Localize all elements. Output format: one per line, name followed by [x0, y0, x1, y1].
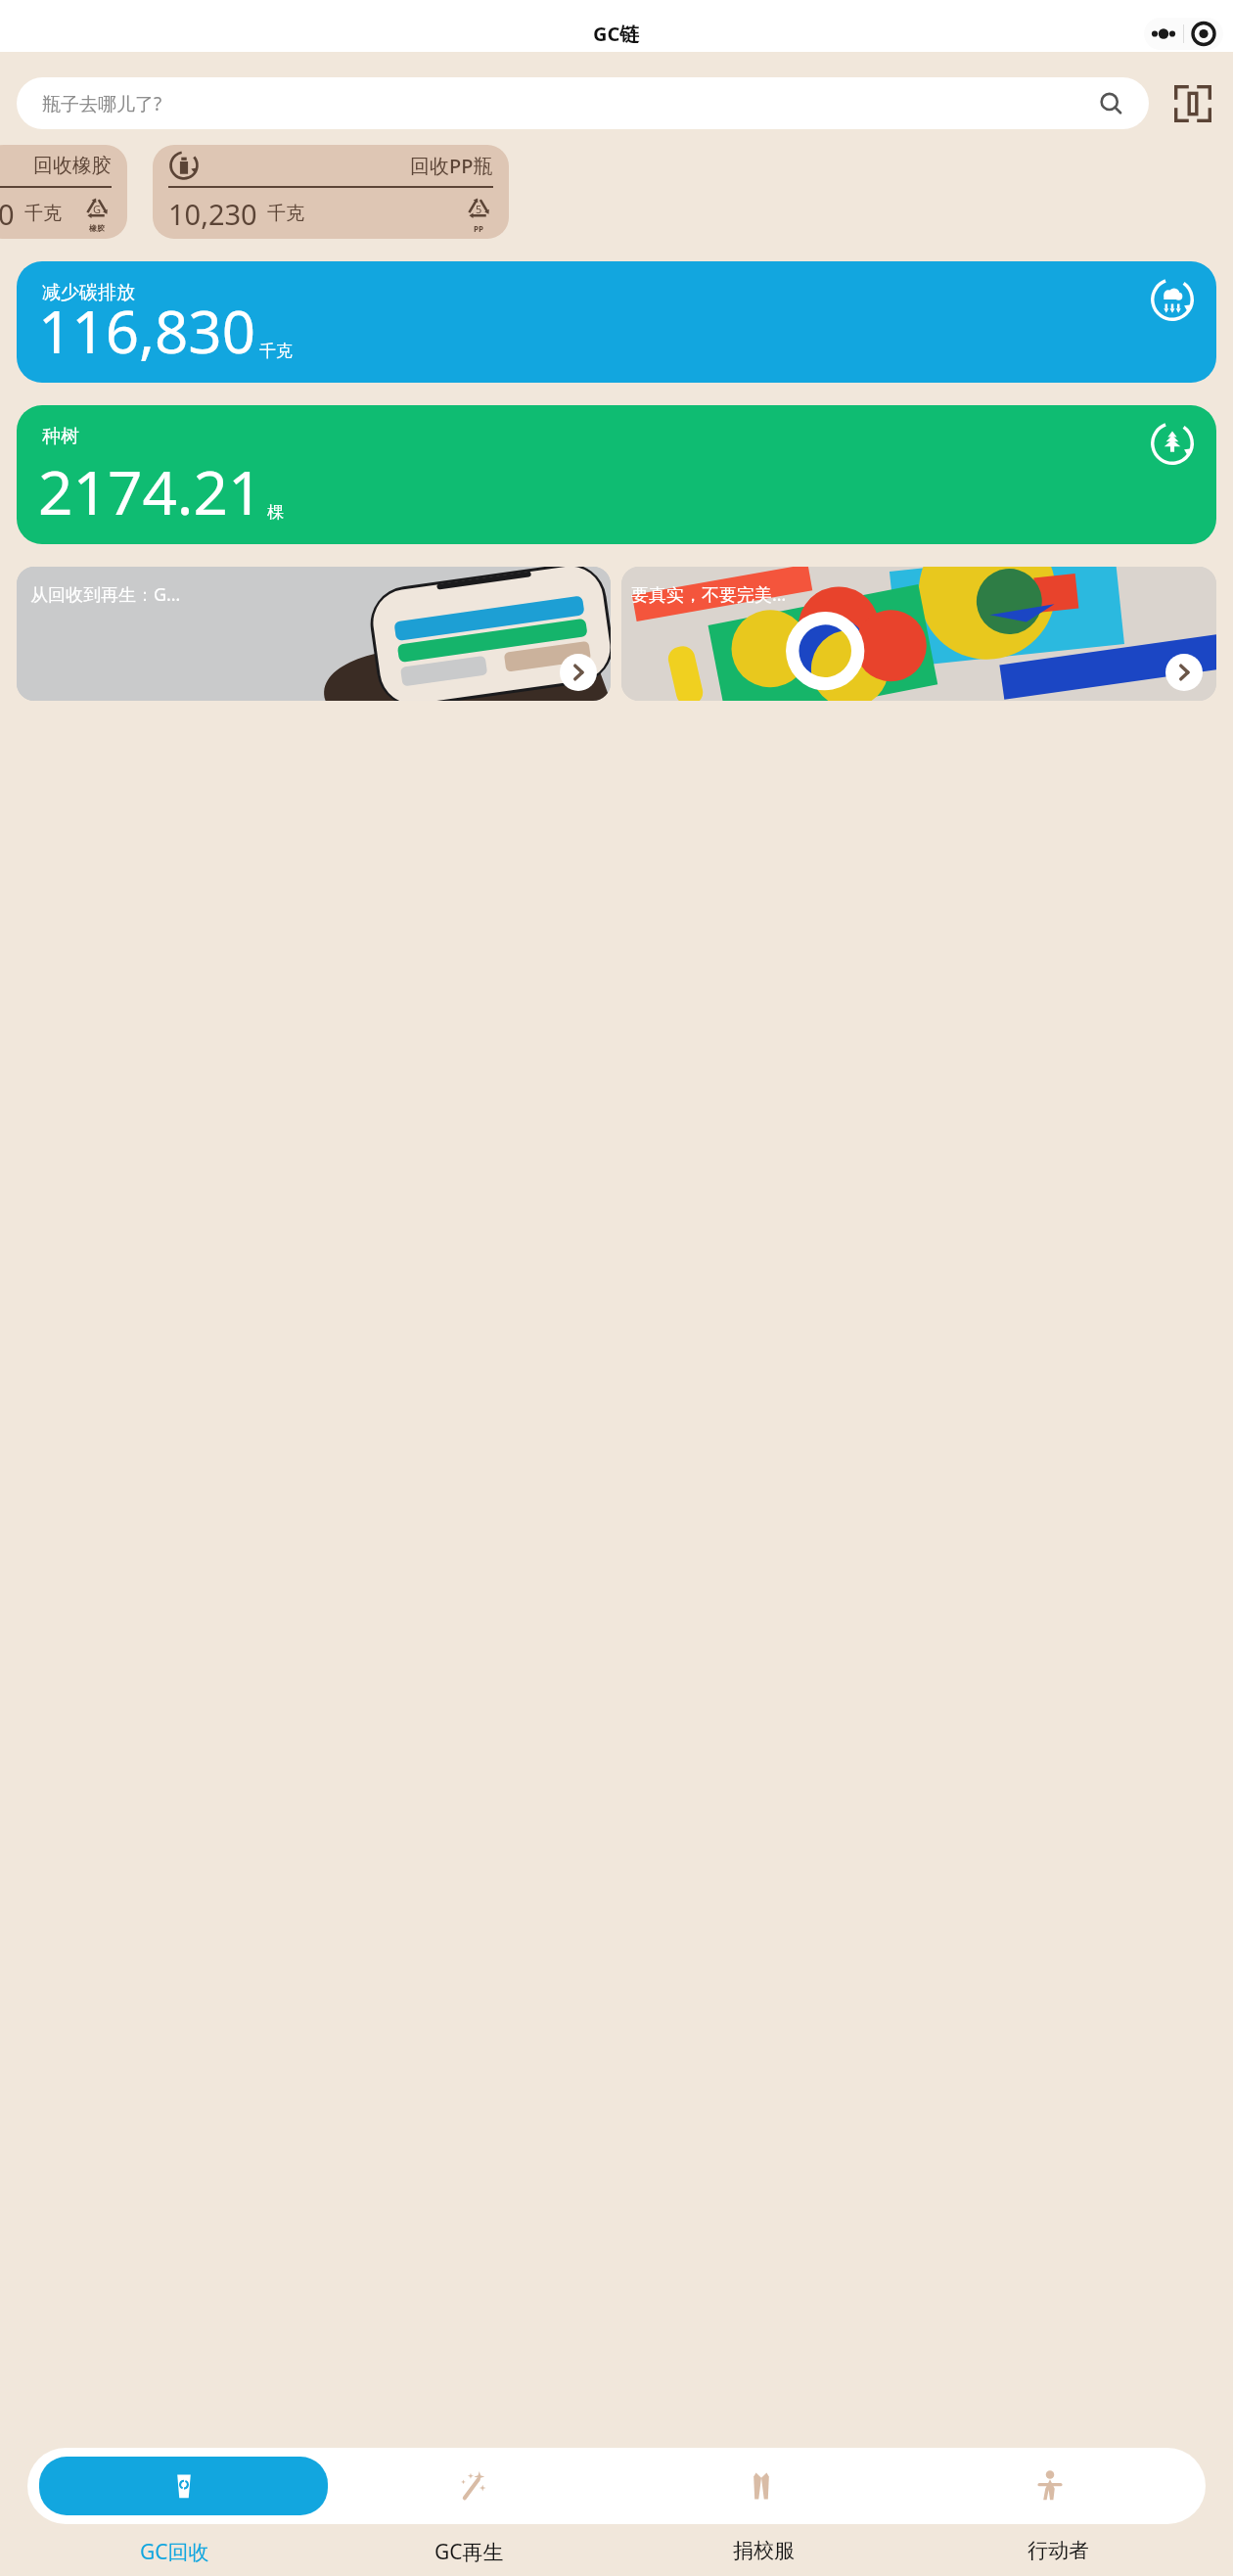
button[interactable]: 回收PP瓶 — [153, 145, 509, 239]
staticText: 回收PP瓶 — [410, 153, 493, 179]
button[interactable]: 种树 — [17, 405, 1216, 544]
staticText: 千克 — [259, 341, 293, 361]
staticText: 减少碳排放 — [42, 281, 135, 304]
staticText: 5 — [476, 202, 482, 216]
staticText: 2174.21 — [38, 450, 263, 532]
button[interactable]: GC回收 — [27, 2538, 322, 2566]
button[interactable]: 行动者 — [905, 2448, 1194, 2524]
staticText: 捐校服 — [733, 2538, 795, 2563]
button[interactable]: 捐校服 — [616, 2538, 911, 2563]
button[interactable]: More options — [1144, 18, 1223, 50]
staticText: GC回收 — [140, 2538, 209, 2566]
staticText: 种树 — [42, 425, 79, 448]
other: Trees planted — [1150, 421, 1195, 466]
staticText: PP — [474, 223, 483, 234]
staticText: 千克 — [267, 202, 304, 225]
staticText: 116,830 — [38, 291, 255, 371]
staticText: 回收橡胶 — [33, 154, 112, 178]
staticText: 橡胶 — [89, 223, 105, 233]
staticText: 10,230 — [168, 195, 257, 233]
button[interactable]: 回收橡胶 — [0, 145, 127, 239]
staticText: 要真实，不要完美… — [631, 582, 787, 607]
button[interactable]: GC再生 — [328, 2448, 616, 2524]
staticText: GC链 — [593, 21, 640, 47]
other: CO2 reduction — [1150, 277, 1195, 322]
staticText: 0 — [0, 195, 15, 233]
button[interactable]: 瓶子去哪儿了? — [17, 77, 1149, 129]
staticText: 从回收到再生：G… — [30, 582, 181, 607]
button[interactable]: 减少碳排放 — [17, 261, 1216, 383]
button[interactable]: GC再生 — [322, 2538, 616, 2566]
staticText: G — [93, 202, 102, 216]
staticText: 棵 — [267, 502, 284, 523]
button[interactable]: Open article — [560, 654, 597, 691]
staticText: GC再生 — [434, 2538, 504, 2566]
staticText: 瓶子去哪儿了? — [42, 91, 162, 116]
button[interactable]: Scan code — [1170, 81, 1215, 126]
button[interactable]: 行动者 — [911, 2538, 1206, 2563]
staticText: 千克 — [24, 202, 62, 225]
staticText: 行动者 — [1027, 2538, 1089, 2563]
button[interactable]: 从回收到再生：G… — [17, 567, 611, 701]
button[interactable]: GC回收 — [39, 2457, 328, 2515]
button[interactable]: 要真实，不要完美… — [621, 567, 1216, 701]
button[interactable]: 捐校服 — [616, 2448, 905, 2524]
button[interactable]: Open article — [1165, 654, 1203, 691]
